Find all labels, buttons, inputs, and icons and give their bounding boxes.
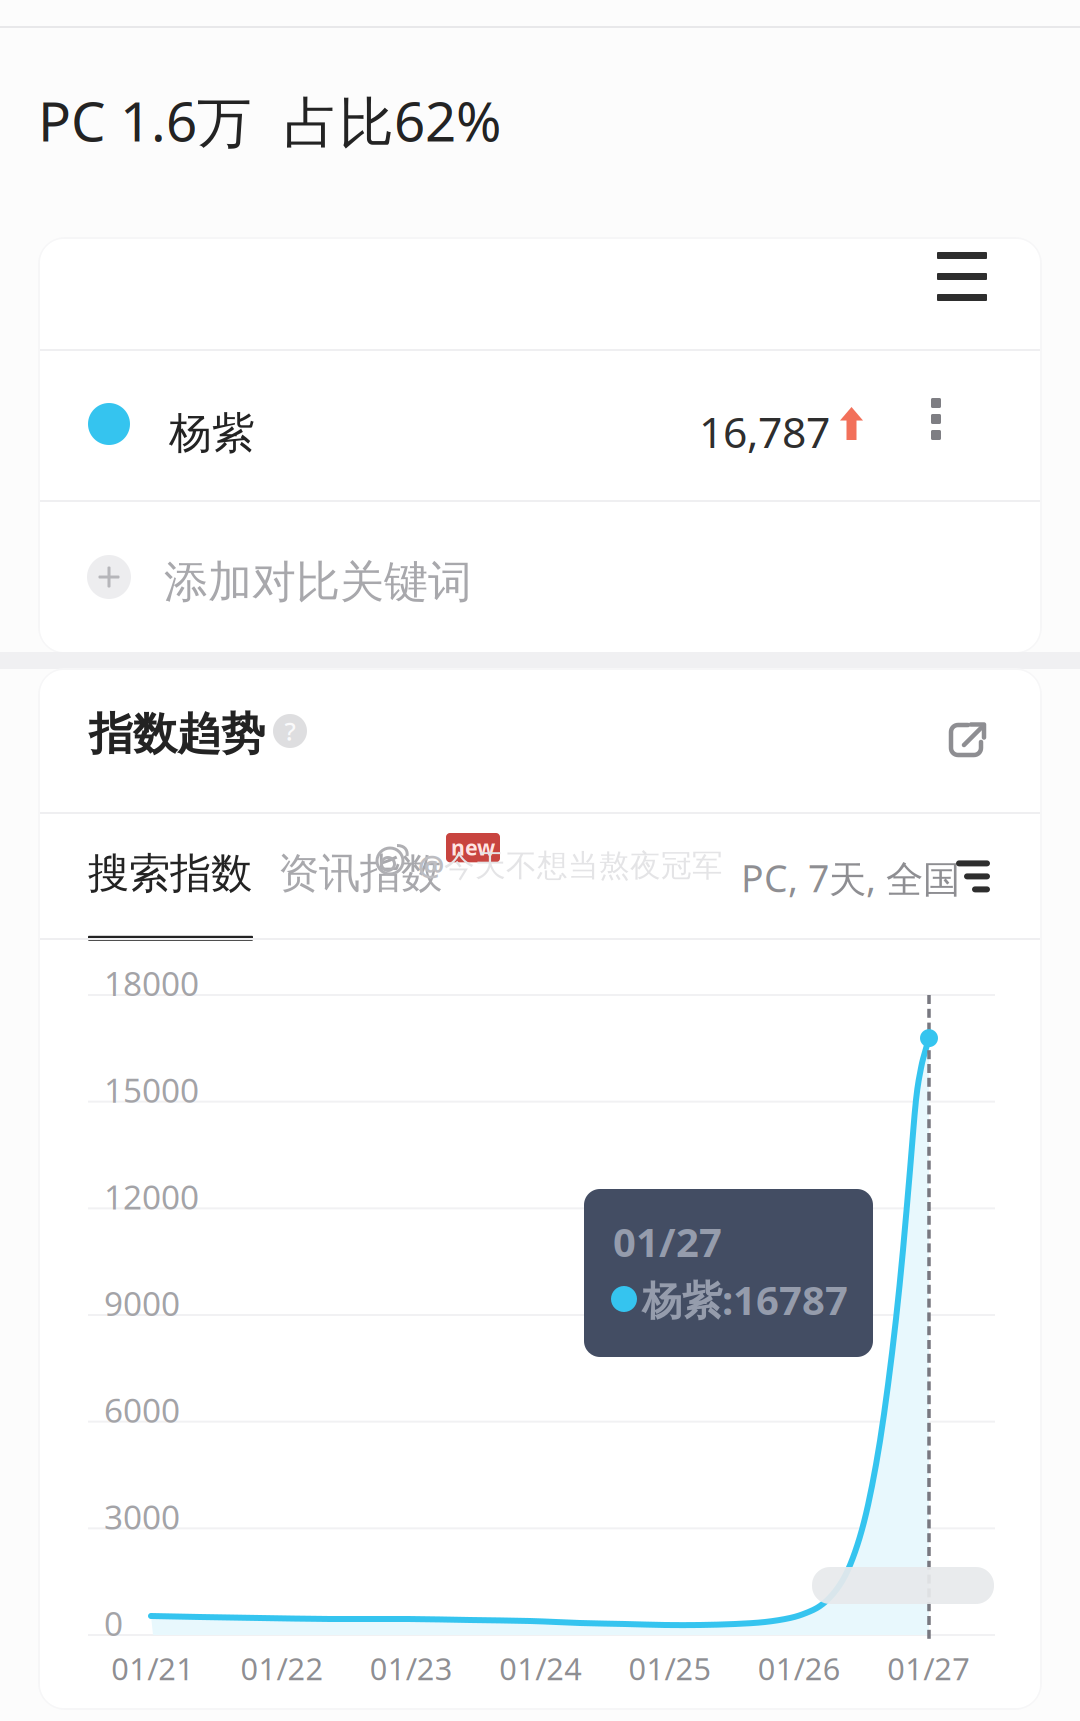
- staticText: ?: [284, 714, 295, 748]
- staticText: 18000: [104, 961, 199, 1005]
- button[interactable]: 杨紫: [38, 350, 1042, 500]
- staticText: 01/24: [499, 1648, 582, 1689]
- staticText: 01/23: [370, 1648, 453, 1689]
- staticText: 指数趋势: [89, 707, 265, 761]
- button[interactable]: Open: [947, 721, 987, 761]
- button[interactable]: 搜索指数: [88, 848, 253, 941]
- button[interactable]: 资讯指数: [278, 848, 442, 899]
- staticText: 今天不想当熬夜冠军: [444, 847, 723, 885]
- staticText: @: [418, 846, 444, 885]
- staticText: 01/22: [240, 1648, 323, 1689]
- staticText: 6000: [104, 1388, 180, 1432]
- staticText: 杨紫: [169, 407, 255, 459]
- staticText: 01/25: [628, 1648, 711, 1689]
- staticText: 15000: [104, 1068, 199, 1112]
- staticText: 添加对比关键词: [164, 555, 472, 609]
- staticText: 16,787: [699, 403, 830, 460]
- staticText: 01/27: [887, 1648, 970, 1689]
- button[interactable]: Menu: [937, 252, 987, 301]
- staticText: 01/26: [758, 1648, 841, 1689]
- staticText: 资讯指数: [278, 848, 442, 899]
- staticText: 01/27: [613, 1215, 722, 1268]
- staticText: 01/21: [111, 1648, 194, 1689]
- staticText: 搜索指数: [88, 848, 252, 899]
- staticText: 9000: [104, 1281, 180, 1325]
- staticText: 12000: [104, 1174, 199, 1219]
- staticText: new: [451, 833, 495, 861]
- staticText: PC 1.6万 占比62%: [38, 84, 501, 157]
- staticText: 杨紫:16787: [642, 1273, 848, 1326]
- staticText: 3000: [104, 1494, 180, 1539]
- staticText: PC, 7天, 全国: [741, 853, 960, 903]
- staticText: 0: [104, 1601, 123, 1645]
- button[interactable]: PC, 7天, 全国: [741, 853, 990, 903]
- button[interactable]: 添加对比关键词: [38, 501, 1042, 654]
